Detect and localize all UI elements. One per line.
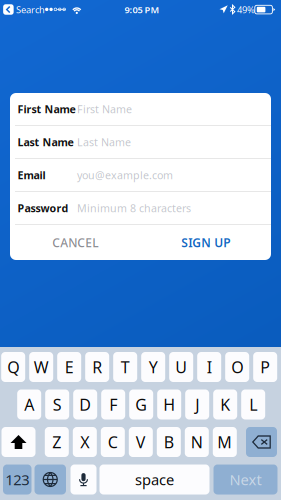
staticText: First Name (77, 102, 132, 116)
button[interactable]: X (73, 427, 97, 457)
staticText: Q (7, 356, 19, 378)
staticText: First Name (17, 102, 75, 116)
staticText: T (121, 356, 130, 378)
button[interactable]: A (17, 389, 41, 419)
staticText: SIGN UP (181, 234, 230, 250)
staticText: Z (52, 431, 61, 453)
staticText: Next (229, 470, 261, 489)
staticText: V (136, 431, 146, 453)
staticText: F (109, 394, 117, 415)
button[interactable]: SIGN UP (140, 225, 271, 260)
staticText: X (80, 431, 89, 453)
button[interactable]: Q (1, 352, 25, 382)
staticText: G (135, 394, 147, 415)
button[interactable]: 123 (3, 464, 31, 494)
button[interactable]: Y (141, 352, 165, 382)
button[interactable]: Dictate (70, 464, 96, 494)
staticText: B (164, 431, 174, 453)
staticText: E (65, 356, 74, 378)
staticText: J (195, 394, 199, 415)
staticText: D (79, 394, 91, 415)
staticText: N (191, 431, 203, 453)
staticText: U (175, 356, 187, 378)
staticText: Last Name (17, 135, 73, 149)
button[interactable]: Z (45, 427, 69, 457)
staticText: O (231, 356, 243, 378)
staticText: K (220, 394, 230, 415)
button[interactable]: S (45, 389, 69, 419)
staticText: Password (17, 201, 68, 215)
staticText: S (53, 394, 62, 415)
button[interactable]: V (129, 427, 153, 457)
button[interactable]: T (113, 352, 137, 382)
button[interactable]: CANCEL (10, 225, 140, 260)
button[interactable]: P (253, 352, 277, 382)
button[interactable]: B (157, 427, 181, 457)
staticText: W (34, 356, 49, 378)
button[interactable]: Shift (1, 427, 35, 457)
button[interactable]: E (57, 352, 81, 382)
staticText: 49% (237, 3, 255, 16)
button[interactable]: Delete (246, 427, 277, 457)
staticText: I (207, 356, 212, 378)
button[interactable]: G (129, 389, 153, 419)
staticText: Minimum 8 characters (77, 201, 191, 215)
staticText: M (217, 431, 232, 453)
staticText: Y (149, 356, 158, 378)
button[interactable]: C (101, 427, 125, 457)
button[interactable]: L (241, 389, 265, 419)
button[interactable]: W (29, 352, 53, 382)
button[interactable]: F (101, 389, 125, 419)
staticText: H (163, 394, 175, 415)
staticText: you@example.com (77, 168, 173, 182)
staticText: Last Name (77, 135, 131, 149)
staticText: CANCEL (52, 234, 98, 250)
button[interactable]: R (85, 352, 109, 382)
button[interactable]: space (99, 464, 209, 494)
staticText: Email (17, 168, 45, 182)
staticText: Search (16, 3, 45, 16)
staticText: 9:05 PM (125, 3, 160, 16)
staticText: P (260, 356, 270, 378)
button[interactable]: I (197, 352, 221, 382)
button[interactable]: Switch keyboard (34, 464, 66, 494)
button[interactable]: U (169, 352, 193, 382)
staticText: L (249, 394, 257, 415)
button[interactable]: M (213, 427, 237, 457)
staticText: A (24, 394, 34, 415)
staticText: space (135, 470, 174, 489)
button[interactable]: Next (213, 464, 277, 494)
button[interactable]: D (73, 389, 97, 419)
staticText: R (92, 356, 102, 378)
button[interactable]: N (185, 427, 209, 457)
staticText: 123 (5, 470, 29, 489)
button[interactable]: O (225, 352, 249, 382)
button[interactable]: K (213, 389, 237, 419)
button[interactable]: J (185, 389, 209, 419)
staticText: C (108, 431, 118, 453)
button[interactable]: H (157, 389, 181, 419)
